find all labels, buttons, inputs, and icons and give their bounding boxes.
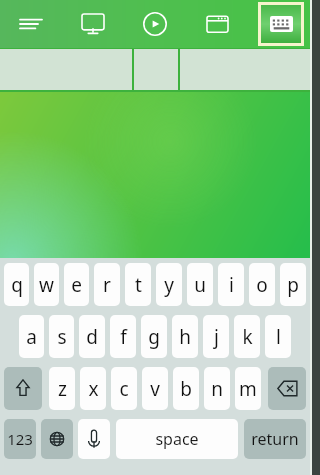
staticText: space (155, 428, 199, 450)
staticText: v (150, 376, 160, 402)
button[interactable]: 123 (4, 419, 36, 459)
staticText: h (179, 324, 191, 350)
staticText: j (214, 324, 219, 350)
staticText: f (120, 324, 127, 350)
staticText: n (211, 376, 223, 402)
staticText: a (26, 324, 37, 350)
staticText: s (57, 324, 67, 350)
button[interactable]: w (34, 263, 59, 306)
staticText: return (251, 428, 299, 450)
staticText: c (119, 376, 129, 402)
staticText: l (276, 324, 281, 350)
staticText: o (256, 272, 268, 298)
staticText: x (88, 376, 99, 402)
button[interactable]: g (141, 315, 167, 358)
button[interactable]: Windows (186, 0, 248, 48)
button[interactable]: t (125, 263, 151, 306)
button[interactable]: f (110, 315, 136, 358)
staticText: i (229, 272, 234, 298)
button[interactable]: k (234, 315, 260, 358)
button[interactable]: Keyboard (261, 5, 301, 43)
button[interactable]: e (64, 263, 89, 306)
button[interactable]: z (49, 367, 75, 410)
button[interactable]: j (203, 315, 229, 358)
staticText: b (180, 376, 192, 402)
staticText: u (194, 272, 206, 298)
staticText: e (71, 272, 82, 298)
staticText: t (135, 272, 142, 298)
button[interactable]: h (172, 315, 198, 358)
button[interactable]: r (94, 263, 120, 306)
button[interactable]: y (156, 263, 182, 306)
button[interactable]: return (244, 419, 306, 459)
button[interactable]: a (19, 315, 44, 358)
button[interactable]: m (235, 367, 261, 410)
button[interactable]: q (4, 263, 29, 306)
staticText: y (164, 272, 174, 298)
button[interactable]: s (49, 315, 74, 358)
staticText: r (103, 272, 111, 298)
button[interactable]: space (116, 419, 238, 459)
button[interactable]: Menu (0, 0, 62, 48)
button[interactable]: Play (124, 0, 186, 48)
button[interactable]: b (173, 367, 199, 410)
staticText: g (148, 324, 160, 350)
staticText: k (242, 324, 253, 350)
button[interactable]: i (218, 263, 244, 306)
staticText: p (287, 272, 299, 298)
button[interactable]: Backspace (268, 367, 306, 410)
staticText: 123 (7, 429, 33, 449)
button[interactable]: Change keyboard (41, 419, 73, 459)
staticText: w (39, 272, 54, 298)
staticText: m (239, 376, 257, 402)
button[interactable]: Shift (4, 367, 42, 410)
button[interactable]: p (280, 263, 306, 306)
button[interactable]: v (142, 367, 168, 410)
button[interactable]: Display (62, 0, 124, 48)
button[interactable]: c (111, 367, 137, 410)
button[interactable]: d (79, 315, 105, 358)
button[interactable]: Dictate (78, 419, 110, 459)
button[interactable]: n (204, 367, 230, 410)
staticText: z (58, 376, 67, 402)
button[interactable]: x (80, 367, 106, 410)
button[interactable]: u (187, 263, 213, 306)
button[interactable]: o (249, 263, 275, 306)
button[interactable]: l (265, 315, 291, 358)
staticText: q (11, 272, 23, 298)
staticText: d (86, 324, 98, 350)
